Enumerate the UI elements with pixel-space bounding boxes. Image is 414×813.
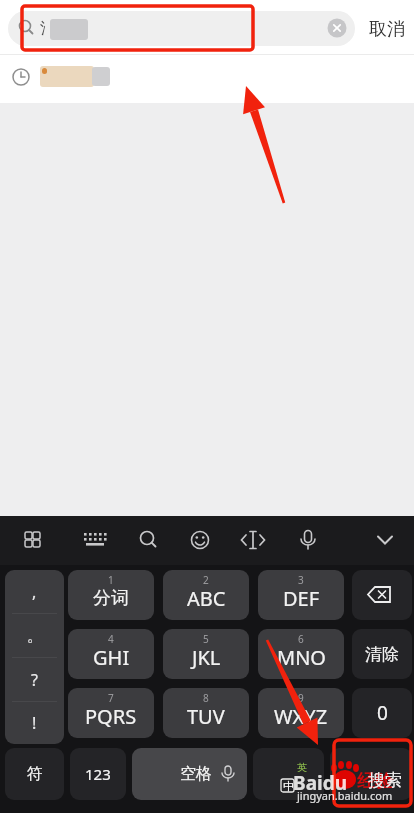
staticText: 搜索 xyxy=(368,770,402,791)
staticText: jingyan.baidu.com xyxy=(297,788,393,803)
staticText: 1 xyxy=(108,573,114,587)
staticText: DEF xyxy=(283,585,320,612)
button[interactable] xyxy=(253,748,324,800)
staticText: 取消 xyxy=(369,18,405,41)
button[interactable]: 2 xyxy=(163,570,249,620)
button[interactable] xyxy=(352,570,412,620)
button[interactable] xyxy=(330,748,412,800)
staticText: 0 xyxy=(377,700,388,726)
button[interactable]: 取消 xyxy=(363,17,411,41)
staticText: 清除 xyxy=(365,644,399,665)
button[interactable] xyxy=(8,11,355,46)
button[interactable]: 9 xyxy=(258,688,344,738)
staticText: 5 xyxy=(203,632,209,646)
staticText: 英 xyxy=(297,761,307,774)
staticText: 符 xyxy=(27,764,43,784)
button[interactable]: 6 xyxy=(258,629,344,679)
button[interactable] xyxy=(0,55,414,103)
staticText: 氵 xyxy=(40,19,55,38)
staticText: MNO xyxy=(277,644,326,671)
button[interactable]: 符 xyxy=(5,748,64,800)
staticText: , xyxy=(32,581,37,603)
staticText: Baidu xyxy=(293,770,348,796)
staticText: 空格 xyxy=(180,764,212,784)
button[interactable]: 清除 xyxy=(352,629,412,679)
staticText: 6 xyxy=(298,632,304,646)
staticText: 9 xyxy=(298,691,304,705)
staticText: 7 xyxy=(108,691,114,705)
staticText: 8 xyxy=(203,691,209,705)
button[interactable]: 3 xyxy=(258,570,344,620)
staticText: JKL xyxy=(192,644,221,671)
staticText: 。 xyxy=(27,626,43,646)
staticText: TUV xyxy=(187,703,225,730)
button[interactable]: 4 xyxy=(68,629,154,679)
staticText: WXYZ xyxy=(274,703,328,730)
staticText: 分词 xyxy=(93,587,129,610)
staticText: PQRS xyxy=(85,703,137,730)
button[interactable]: 1 xyxy=(68,570,154,620)
button[interactable] xyxy=(132,748,247,800)
button[interactable]: 5 xyxy=(163,629,249,679)
button[interactable]: 0 xyxy=(352,688,412,738)
staticText: 123 xyxy=(85,764,111,784)
button[interactable]: 7 xyxy=(68,688,154,738)
button[interactable]: 123 xyxy=(70,748,126,800)
staticText: 3 xyxy=(298,573,304,587)
staticText: 经验 xyxy=(357,770,393,793)
staticText: ? xyxy=(31,669,38,691)
staticText: 2 xyxy=(203,573,209,587)
staticText: GHI xyxy=(93,644,130,671)
staticText: ! xyxy=(32,712,37,734)
staticText: 4 xyxy=(108,632,114,646)
button[interactable] xyxy=(5,570,64,744)
staticText: 中 xyxy=(283,779,294,793)
staticText: ABC xyxy=(187,585,226,612)
button[interactable]: 8 xyxy=(163,688,249,738)
